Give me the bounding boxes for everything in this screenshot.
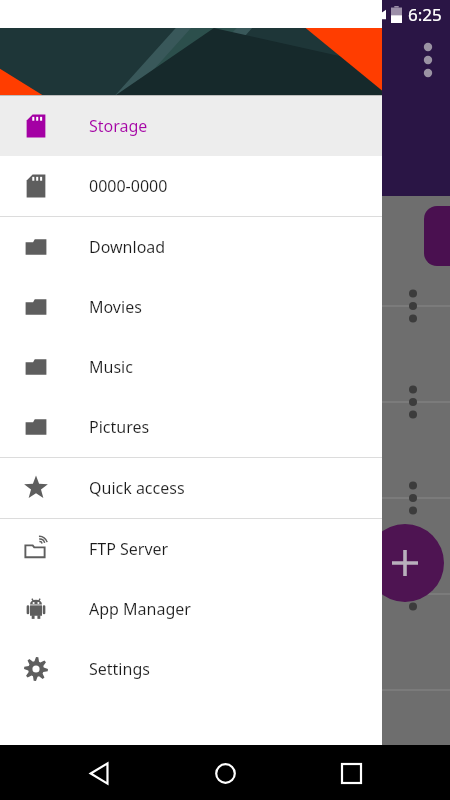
staticText: Movies: [89, 296, 142, 318]
button[interactable]: Pictures: [0, 397, 382, 457]
button[interactable]: Download: [0, 217, 382, 277]
staticText: 0000-0000: [89, 175, 168, 197]
staticText: Settings: [89, 658, 150, 680]
button[interactable]: FTP Server: [0, 519, 382, 579]
button[interactable]: Item options: [396, 577, 430, 611]
staticText: App Manager: [89, 598, 191, 620]
button[interactable]: App Manager: [0, 579, 382, 639]
button[interactable]: Movies: [0, 277, 382, 337]
button[interactable]: Back: [72, 746, 126, 800]
button[interactable]: More options: [406, 38, 450, 82]
button[interactable]: Storage: [0, 96, 382, 156]
button[interactable]: Recents: [324, 746, 378, 800]
staticText: Storage: [89, 115, 148, 137]
button[interactable]: Item options: [396, 481, 430, 515]
staticText: 6:25: [408, 3, 442, 26]
button[interactable]: Settings: [0, 639, 382, 699]
staticText: Pictures: [89, 416, 150, 438]
button[interactable]: Music: [0, 337, 382, 397]
button[interactable]: Home: [198, 746, 252, 800]
button[interactable]: Add: [366, 524, 444, 602]
staticText: Quick access: [89, 477, 185, 499]
staticText: Download: [89, 236, 166, 258]
button[interactable]: 0000-0000: [0, 156, 382, 216]
staticText: FTP Server: [89, 538, 169, 560]
staticText: Music: [89, 356, 133, 378]
button[interactable]: Item options: [396, 385, 430, 419]
button[interactable]: Quick access: [0, 458, 382, 518]
button[interactable]: Item options: [396, 289, 430, 323]
